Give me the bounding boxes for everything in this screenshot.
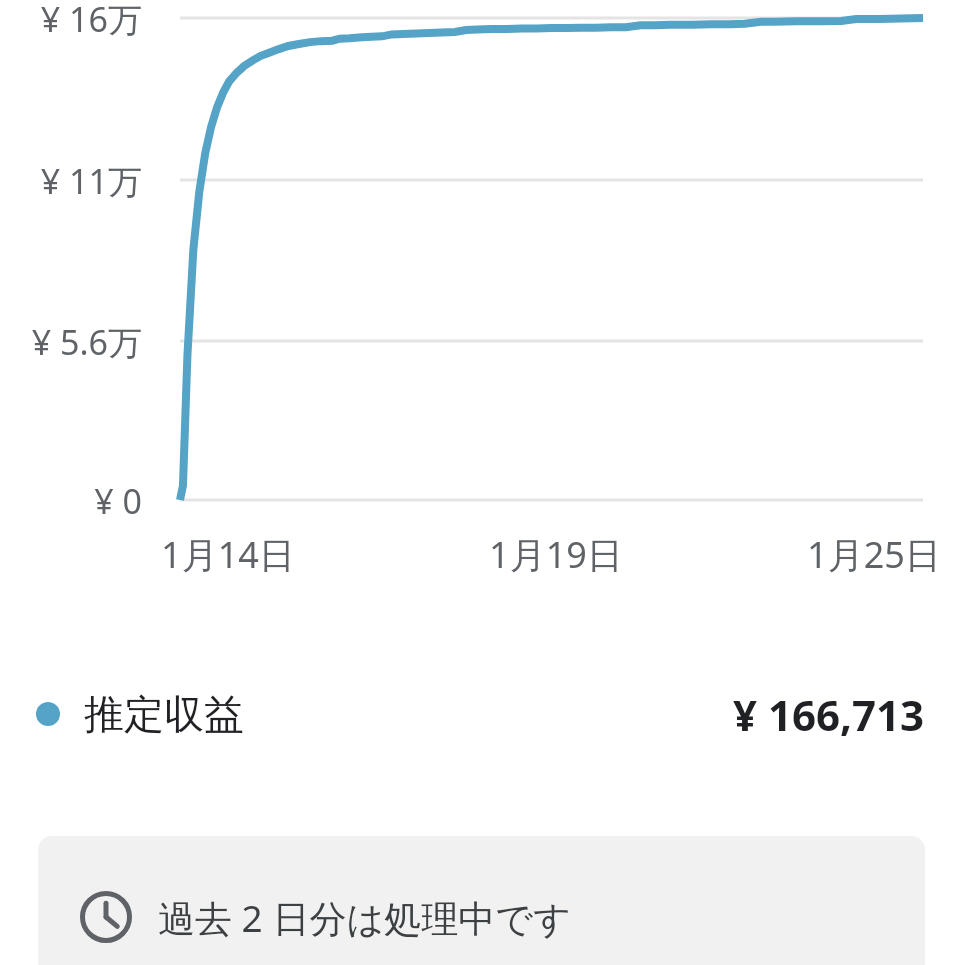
staticText: ¥ 0 (94, 478, 142, 522)
other: Processing (80, 891, 132, 943)
staticText: 過去 2 日分は処理中です (158, 892, 572, 943)
staticText: ¥ 11万 (40, 158, 142, 202)
staticText: 推定収益 (84, 689, 244, 739)
staticText: ¥ 5.6万 (31, 319, 142, 363)
staticText: 1月19日 (489, 530, 623, 579)
button[interactable]: 推定収益 (0, 672, 965, 756)
staticText: 1月25日 (807, 530, 941, 579)
staticText: ¥ 16万 (40, 0, 142, 40)
button[interactable]: Processing (38, 836, 925, 965)
staticText: ¥ 166,713 (733, 686, 925, 743)
staticText: 1月14日 (161, 530, 295, 579)
